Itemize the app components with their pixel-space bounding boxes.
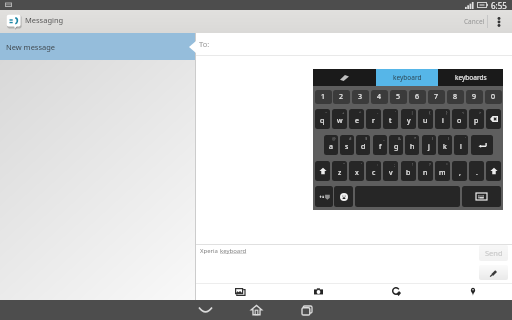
button[interactable]: h (405, 135, 419, 155)
button[interactable]: , (452, 161, 467, 181)
button[interactable]: x (349, 161, 364, 181)
button[interactable] (334, 186, 353, 207)
staticText: 4 (377, 92, 382, 102)
button[interactable]: l (454, 135, 468, 155)
button[interactable]: 0 (485, 90, 502, 104)
staticText: | (411, 110, 414, 115)
staticText: s (345, 142, 349, 152)
button[interactable]: e (349, 109, 364, 129)
button[interactable]: y (401, 109, 416, 129)
button[interactable]: z (332, 161, 347, 181)
button[interactable]: w (332, 109, 347, 129)
button[interactable]: 3 (352, 90, 369, 104)
staticText: < (462, 110, 465, 115)
button[interactable]: g (389, 135, 403, 155)
button[interactable]: keyboard (376, 69, 438, 86)
button[interactable]: r (366, 109, 381, 129)
button[interactable]: Send (479, 245, 508, 261)
button[interactable]: f (373, 135, 387, 155)
staticText: g (394, 142, 399, 152)
button[interactable]: 4 (371, 90, 388, 104)
staticText: n (423, 168, 428, 178)
button[interactable]: k (438, 135, 452, 155)
button[interactable] (315, 186, 333, 207)
button[interactable]: 1 (315, 90, 332, 104)
button[interactable]: Cancel (461, 10, 487, 33)
staticText: q (320, 116, 325, 126)
button[interactable]: Home (244, 300, 268, 320)
staticText: ) (448, 136, 450, 141)
button[interactable]: . (469, 161, 484, 181)
button[interactable]: u (418, 109, 433, 129)
button[interactable]: v (383, 161, 398, 181)
button[interactable]: m (435, 161, 450, 181)
button[interactable]: 2 (333, 90, 350, 104)
button[interactable]: 9 (466, 90, 483, 104)
button[interactable]: q (315, 109, 330, 129)
button[interactable]: Attach (479, 265, 508, 280)
button[interactable]: n (418, 161, 433, 181)
staticText: : (377, 162, 379, 167)
staticText: ~ (325, 110, 328, 115)
staticText: $ (365, 136, 368, 141)
button[interactable]: New message (0, 33, 196, 60)
button[interactable] (471, 135, 493, 155)
staticText: . (476, 168, 478, 178)
staticText: _ (383, 136, 385, 141)
staticText: Xperia (200, 247, 220, 255)
staticText: z (338, 168, 342, 178)
button[interactable]: j (422, 135, 436, 155)
button[interactable]: 8 (447, 90, 464, 104)
button[interactable]: t (383, 109, 398, 129)
staticText: keyboard (393, 73, 422, 82)
staticText: 2 (339, 92, 344, 102)
button[interactable]: Back (193, 300, 217, 320)
staticText: j (428, 142, 430, 152)
staticText: * (414, 136, 417, 141)
staticText: " (343, 162, 345, 167)
button[interactable]: d (356, 135, 370, 155)
button[interactable] (486, 109, 501, 129)
staticText: k (443, 142, 447, 152)
staticText: a (329, 142, 333, 152)
button[interactable]: b (401, 161, 416, 181)
staticText: - (377, 110, 379, 115)
button[interactable]: p (469, 109, 484, 129)
button[interactable]: 5 (390, 90, 407, 104)
button[interactable] (486, 161, 501, 181)
button[interactable]: Share location (457, 283, 489, 300)
staticText: 7 (434, 92, 439, 102)
button[interactable]: a (324, 135, 338, 155)
staticText: + (342, 110, 345, 115)
button[interactable]: 6 (409, 90, 426, 104)
button[interactable] (315, 161, 330, 181)
button[interactable]: keyboards (438, 69, 503, 86)
button[interactable]: 7 (428, 90, 445, 104)
staticText: ? (429, 162, 431, 167)
staticText: ' (465, 136, 466, 141)
staticText: m (439, 168, 446, 178)
button[interactable]: o (452, 109, 467, 129)
staticText: o (457, 116, 462, 126)
staticText: ^ (359, 110, 362, 115)
button[interactable]: Insert picture (224, 283, 256, 300)
button[interactable]: Take photo (302, 283, 334, 300)
staticText: 0 (491, 92, 496, 102)
staticText: 6 (415, 92, 420, 102)
button[interactable]: Record audio (380, 283, 412, 300)
staticText: ' (361, 162, 362, 167)
staticText: w (337, 116, 343, 126)
button[interactable]: Recent apps (295, 300, 319, 320)
button[interactable]: Voice input (313, 69, 376, 86)
button[interactable]: More options (489, 10, 509, 33)
staticText: h (410, 142, 415, 152)
staticText: 1 (321, 92, 326, 102)
button[interactable]: c (366, 161, 381, 181)
button[interactable] (462, 186, 501, 207)
button[interactable]: i (435, 109, 450, 129)
staticText: ( (432, 136, 434, 141)
button[interactable]: s (340, 135, 354, 155)
staticText: To: (199, 39, 210, 49)
staticText: r (372, 116, 375, 126)
